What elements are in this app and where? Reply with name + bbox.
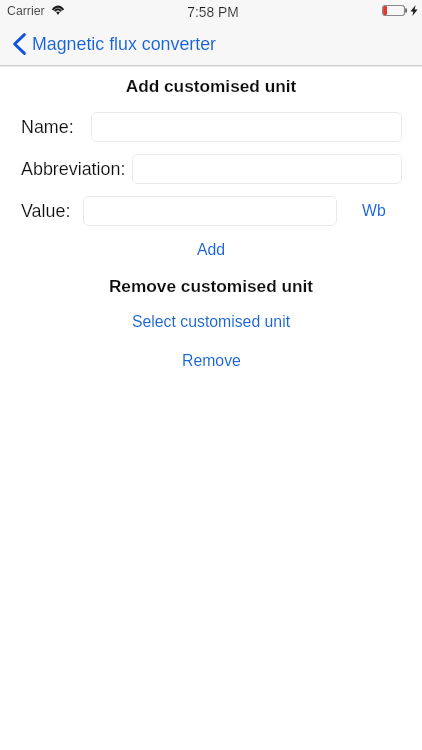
staticText: Add	[197, 241, 226, 259]
staticText: Value:	[21, 201, 71, 221]
staticText: 7:58 PM	[2, 5, 422, 20]
staticText: Add customised unit	[0, 76, 422, 95]
button[interactable]	[132, 154, 402, 184]
staticText: Remove	[182, 352, 241, 370]
staticText: Select customised unit	[132, 313, 291, 331]
button[interactable]: Back	[0, 33, 222, 55]
button[interactable]: Remove	[0, 352, 422, 374]
other: Back	[13, 33, 26, 55]
button[interactable]: Add	[0, 241, 422, 263]
button[interactable]: Select customised unit	[0, 313, 422, 335]
button[interactable]	[83, 196, 337, 226]
staticText: Remove customised unit	[0, 276, 422, 295]
staticText: Wb	[362, 202, 386, 220]
staticText: Magnetic flux converter	[32, 34, 216, 54]
staticText: Abbreviation:	[21, 159, 126, 179]
staticText: Carrier	[7, 4, 45, 18]
staticText: Name:	[21, 117, 74, 137]
button[interactable]	[91, 112, 402, 142]
